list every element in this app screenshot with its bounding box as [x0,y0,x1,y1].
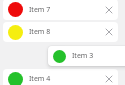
staticText: Item 3 [72,51,94,61]
staticText: Item 7 [29,5,51,15]
button[interactable]: Item 3 [48,46,125,66]
button[interactable]: Remove item [103,4,115,16]
button[interactable]: Item 4 [3,69,118,85]
button[interactable]: Item 7 [3,0,118,20]
button[interactable]: Remove item [103,73,115,85]
staticText: Item 8 [29,27,51,37]
button[interactable]: Item 8 [3,22,118,42]
staticText: Item 4 [29,74,51,84]
button[interactable]: Remove item [103,26,115,38]
